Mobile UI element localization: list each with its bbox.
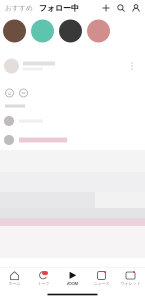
button[interactable]: React bbox=[5, 88, 14, 97]
staticText: おすすめ bbox=[5, 4, 33, 12]
button[interactable]: More options bbox=[129, 61, 135, 70]
button[interactable]: Search bbox=[117, 4, 132, 12]
button[interactable]: Story bbox=[59, 19, 82, 42]
button[interactable]: Create post bbox=[102, 4, 117, 12]
button[interactable]: おすすめ bbox=[0, 4, 33, 12]
button[interactable]: ウォレット bbox=[116, 268, 145, 289]
button[interactable]: ニュース bbox=[87, 268, 116, 289]
staticText: VOOM bbox=[66, 281, 78, 286]
button[interactable]: Story bbox=[87, 19, 110, 42]
staticText: トーク bbox=[37, 281, 49, 286]
staticText: フォロー中 bbox=[39, 3, 79, 13]
button[interactable]: Profile bbox=[132, 4, 145, 12]
button[interactable]: Story bbox=[3, 19, 26, 42]
button[interactable]: トーク bbox=[29, 268, 58, 289]
staticText: ホーム bbox=[8, 281, 20, 286]
button[interactable]: Story bbox=[31, 19, 54, 42]
button[interactable]: フォロー中 bbox=[33, 3, 79, 13]
staticText: ウォレット bbox=[120, 281, 140, 286]
staticText: ニュース bbox=[93, 281, 109, 286]
button[interactable]: VOOM bbox=[58, 268, 87, 289]
button[interactable]: Comment bbox=[19, 88, 28, 97]
button[interactable]: ホーム bbox=[0, 268, 29, 289]
